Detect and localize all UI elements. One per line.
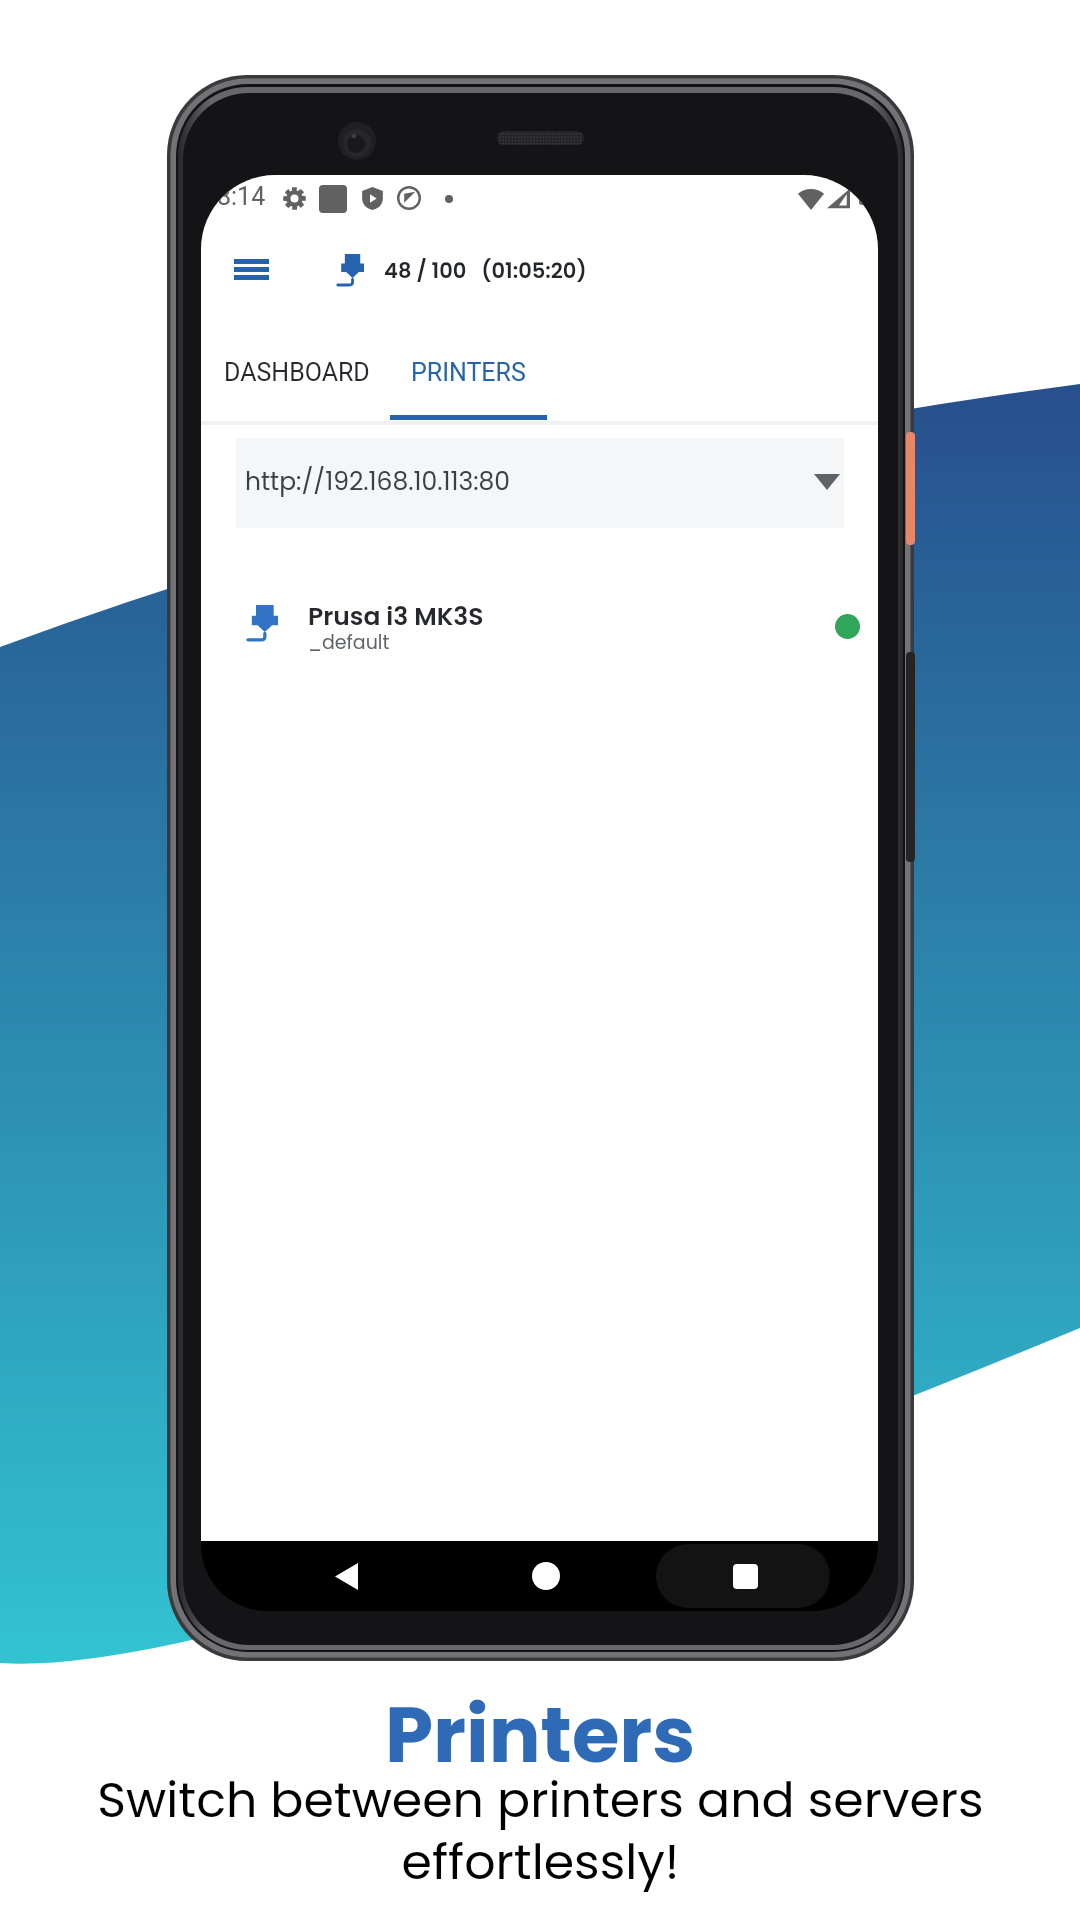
staticText: Printers <box>385 1681 696 1789</box>
staticText: Switch between printers and servers effo… <box>97 1766 984 1897</box>
button[interactable]: Home <box>511 1541 581 1611</box>
button[interactable]: DASHBOARD <box>209 325 384 420</box>
staticText: DASHBOARD <box>224 358 370 387</box>
staticText: 48 / 100 (01:05:20) <box>384 256 587 285</box>
button[interactable]: Back <box>311 1541 381 1611</box>
button[interactable]: Prusa i3 MK3S <box>201 579 878 667</box>
staticText: 8:14 <box>217 182 266 211</box>
staticText: http://192.168.10.113:80 <box>245 464 510 499</box>
button[interactable]: http://192.168.10.113:80 <box>236 438 844 528</box>
button[interactable]: Open navigation drawer <box>215 230 287 308</box>
staticText: _default <box>308 629 390 656</box>
staticText: Prusa i3 MK3S <box>308 599 484 634</box>
button[interactable]: Recent apps <box>710 1541 780 1611</box>
staticText: PRINTERS <box>411 358 526 387</box>
button[interactable]: PRINTERS <box>389 325 547 420</box>
